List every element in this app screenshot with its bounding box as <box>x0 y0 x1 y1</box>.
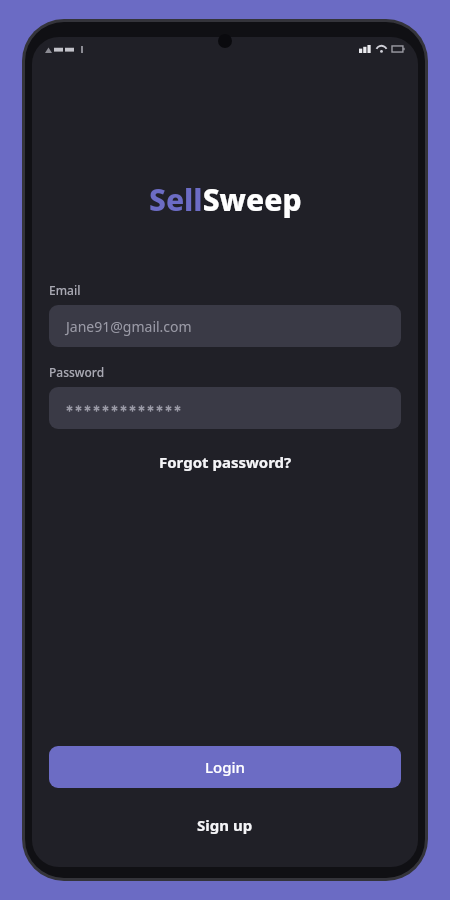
button[interactable]: Forgot password? <box>49 445 401 479</box>
button[interactable]: Sign up <box>49 809 401 841</box>
button[interactable]: Jane91@gmail.com <box>49 305 401 347</box>
staticText: Password <box>49 364 105 380</box>
staticText: Jane91@gmail.com <box>66 317 192 336</box>
staticText: Forgot password? <box>159 452 292 472</box>
button[interactable]: Login <box>49 746 401 788</box>
staticText: Sign up <box>197 815 253 835</box>
staticText: SellSweep <box>149 179 302 220</box>
staticText: Email <box>49 282 81 298</box>
staticText: Login <box>205 757 245 777</box>
button[interactable]: Password <box>49 387 401 429</box>
